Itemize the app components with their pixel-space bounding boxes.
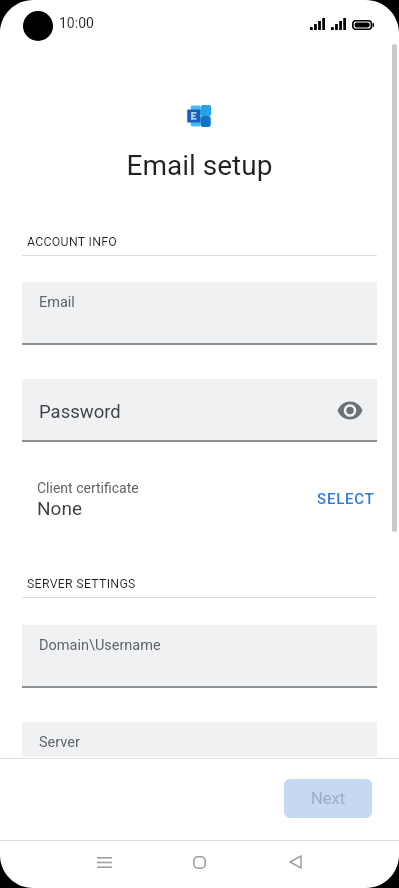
staticText: Client certificate [37, 480, 139, 496]
staticText: Email [39, 294, 75, 311]
button[interactable]: Password [22, 379, 377, 442]
staticText: SERVER SETTINGS [27, 577, 136, 591]
staticText: Email setup [0, 149, 399, 182]
button[interactable]: Home [177, 840, 221, 884]
button[interactable]: Domain\Username [22, 625, 377, 688]
button[interactable]: Server [22, 722, 377, 757]
staticText: ACCOUNT INFO [27, 235, 118, 249]
staticText: None [37, 497, 82, 519]
button[interactable]: Show password [334, 394, 366, 426]
staticText: Password [39, 401, 121, 423]
staticText: SELECT [317, 490, 375, 508]
button[interactable]: Next [284, 779, 372, 818]
staticText: Next [311, 789, 346, 808]
staticText: 10:00 [59, 15, 94, 31]
button[interactable]: Recent apps [82, 840, 126, 884]
button[interactable]: Back [273, 840, 317, 884]
button[interactable]: Client certificate [22, 476, 377, 528]
button[interactable]: SELECT [317, 490, 375, 508]
staticText: Domain\Username [39, 637, 161, 654]
button[interactable]: Email [22, 282, 377, 345]
staticText: Server [39, 734, 80, 751]
